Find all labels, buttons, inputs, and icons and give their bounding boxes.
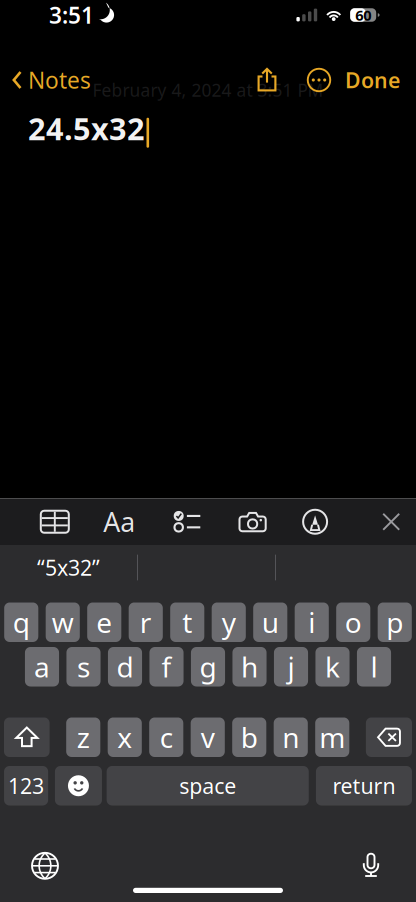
button[interactable]: Format (96, 499, 143, 545)
button[interactable]: 123 (4, 766, 48, 805)
button[interactable]: e (87, 602, 121, 642)
button[interactable]: g (191, 647, 225, 686)
staticText: f (161, 648, 171, 685)
button[interactable]: w (46, 602, 80, 642)
staticText: t (182, 604, 192, 641)
button[interactable]: i (295, 602, 329, 642)
button[interactable]: q (4, 602, 38, 642)
staticText: Aa (103, 504, 135, 539)
button[interactable]: More (295, 58, 343, 102)
staticText: Notes (28, 65, 91, 95)
staticText: r (140, 604, 152, 641)
staticText: x (117, 719, 132, 756)
staticText: y (222, 604, 236, 641)
staticText: u (262, 604, 279, 641)
button[interactable]: Markup (292, 499, 339, 545)
staticText: 24.5x32 (28, 108, 145, 149)
button[interactable]: Notes (0, 58, 99, 102)
staticText: q (13, 604, 30, 641)
button[interactable]: z (66, 717, 100, 757)
staticText: v (201, 719, 215, 756)
staticText: j (287, 648, 294, 685)
button[interactable]: s (66, 647, 100, 686)
button[interactable]: l (357, 647, 391, 686)
staticText: Done (345, 66, 400, 94)
button[interactable]: b (232, 717, 266, 757)
staticText: space (179, 772, 236, 800)
button[interactable]: k (315, 647, 349, 686)
staticText: a (34, 648, 50, 685)
button[interactable]: Emoji (55, 766, 102, 805)
button[interactable]: Next keyboard (15, 844, 75, 888)
staticText: g (199, 648, 216, 685)
staticText: c (160, 719, 173, 756)
button[interactable]: m (315, 717, 349, 757)
staticText: k (325, 648, 340, 685)
button[interactable]: Shift (4, 717, 50, 757)
button[interactable]: space (107, 766, 309, 805)
button[interactable]: Dictation (341, 844, 401, 888)
button[interactable]: d (108, 647, 142, 686)
button[interactable]: u (253, 602, 287, 642)
button[interactable]: Delete (366, 717, 412, 757)
button[interactable]: v (191, 717, 225, 757)
button[interactable]: t (170, 602, 204, 642)
button[interactable]: h (232, 647, 266, 686)
button[interactable]: o (336, 602, 370, 642)
button[interactable]: j (274, 647, 308, 686)
staticText: February 4, 2024 at 3:51 PM (92, 78, 323, 101)
staticText: 123 (8, 772, 44, 800)
staticText: m (319, 719, 345, 756)
staticText: h (241, 648, 258, 685)
staticText: b (241, 719, 258, 756)
button[interactable]: Hide Keyboard (368, 499, 415, 545)
button[interactable]: return (316, 766, 412, 805)
staticText: l (370, 648, 377, 685)
staticText: 60 (355, 5, 371, 25)
staticText: o (345, 604, 362, 641)
button[interactable]: Done (343, 58, 402, 102)
button[interactable]: p (378, 602, 412, 642)
staticText: return (332, 772, 395, 800)
button[interactable]: y (212, 602, 246, 642)
staticText: i (308, 604, 315, 641)
button[interactable]: n (274, 717, 308, 757)
staticText: d (116, 648, 133, 685)
staticText: z (77, 719, 90, 756)
button[interactable]: Camera (229, 499, 276, 545)
button[interactable]: f (149, 647, 183, 686)
button[interactable]: “5x32” (0, 545, 137, 590)
staticText: s (77, 648, 90, 685)
button[interactable]: Table (31, 499, 78, 545)
button[interactable]: Checklist (164, 499, 211, 545)
staticText: n (282, 719, 299, 756)
button[interactable]: r (129, 602, 163, 642)
button[interactable]: Share (239, 58, 295, 102)
staticText: 3:51 (49, 0, 94, 30)
staticText: e (96, 604, 112, 641)
staticText: p (386, 604, 403, 641)
button[interactable]: a (25, 647, 59, 686)
staticText: w (52, 604, 74, 641)
button[interactable]: c (149, 717, 183, 757)
button[interactable]: x (108, 717, 142, 757)
staticText: “5x32” (37, 553, 100, 582)
